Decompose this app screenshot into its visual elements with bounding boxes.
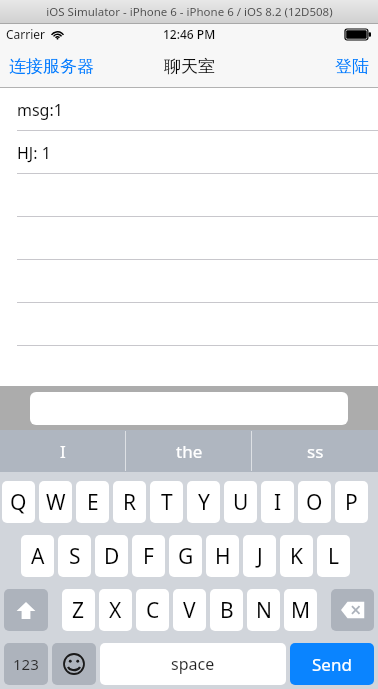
button[interactable]: F <box>132 535 165 577</box>
staticText: 123 <box>13 654 39 674</box>
staticText: H <box>215 542 231 571</box>
button[interactable]: E <box>76 481 109 523</box>
button[interactable]: R <box>113 481 146 523</box>
button[interactable]: 连接服务器 <box>0 48 103 85</box>
staticText: I <box>60 440 66 463</box>
button[interactable]: msg:1 <box>0 88 378 131</box>
button[interactable]: N <box>247 589 280 631</box>
staticText: ss <box>307 440 324 463</box>
button[interactable]: S <box>58 535 91 577</box>
staticText: Send <box>312 653 352 676</box>
staticText: the <box>176 440 203 463</box>
staticText: F <box>143 542 154 571</box>
staticText: G <box>178 542 194 571</box>
staticText: B <box>220 596 234 625</box>
staticText: N <box>256 596 272 625</box>
button[interactable]: A <box>21 535 54 577</box>
button[interactable] <box>0 217 378 260</box>
button[interactable] <box>0 260 378 303</box>
button[interactable]: J <box>243 535 276 577</box>
staticText: O <box>306 488 323 517</box>
staticText: C <box>146 596 160 625</box>
staticText: D <box>104 542 120 571</box>
button[interactable]: B <box>210 589 243 631</box>
staticText: 聊天室 <box>164 56 215 77</box>
button[interactable]: X <box>99 589 132 631</box>
button[interactable]: HJ: 1 <box>0 131 378 174</box>
staticText: P <box>345 488 358 517</box>
button[interactable]: Backspace <box>331 589 374 631</box>
button[interactable]: Shift <box>4 589 48 631</box>
staticText: L <box>328 542 340 571</box>
staticText: R <box>123 488 137 517</box>
staticText: msg:1 <box>17 99 63 121</box>
button[interactable] <box>0 174 378 217</box>
staticText: X <box>109 596 122 625</box>
staticText: T <box>161 488 173 517</box>
staticText: HJ: 1 <box>17 142 51 164</box>
button[interactable]: O <box>298 481 331 523</box>
button[interactable]: C <box>136 589 169 631</box>
button[interactable]: 123 <box>4 643 48 685</box>
staticText: 登陆 <box>335 56 369 77</box>
button[interactable]: V <box>173 589 206 631</box>
staticText: U <box>233 488 249 517</box>
staticText: W <box>46 488 66 517</box>
button[interactable]: M <box>284 589 317 631</box>
staticText: 12:46 PM <box>163 26 216 42</box>
button[interactable]: W <box>39 481 72 523</box>
staticText: space <box>171 653 215 675</box>
staticText: M <box>291 596 311 625</box>
staticText: Q <box>10 488 27 517</box>
button[interactable]: K <box>280 535 313 577</box>
staticText: J <box>257 542 263 571</box>
button[interactable]: D <box>95 535 128 577</box>
staticText: E <box>87 488 99 517</box>
button[interactable]: the <box>126 430 252 472</box>
staticText: Y <box>198 488 210 517</box>
button[interactable]: Z <box>62 589 95 631</box>
button[interactable]: Message input field <box>30 392 348 425</box>
button[interactable] <box>0 303 378 346</box>
button[interactable]: P <box>335 481 368 523</box>
button[interactable]: L <box>317 535 350 577</box>
staticText: iOS Simulator - iPhone 6 - iPhone 6 / iO… <box>46 4 333 20</box>
button[interactable]: T <box>150 481 183 523</box>
staticText: Carrier <box>6 26 46 42</box>
button[interactable]: Send <box>290 643 374 685</box>
button[interactable]: Emoji keyboard <box>52 643 96 685</box>
button[interactable]: I <box>261 481 294 523</box>
button[interactable]: Y <box>187 481 220 523</box>
button[interactable]: 登陆 <box>326 48 378 85</box>
button[interactable]: I <box>0 430 126 472</box>
staticText: 连接服务器 <box>9 56 94 77</box>
staticText: V <box>183 596 196 625</box>
staticText: S <box>69 542 81 571</box>
button[interactable]: space <box>100 643 286 685</box>
button[interactable]: G <box>169 535 202 577</box>
button[interactable]: Q <box>2 481 35 523</box>
button[interactable]: ss <box>252 430 378 472</box>
staticText: K <box>290 542 303 571</box>
staticText: Z <box>72 596 85 625</box>
button[interactable]: H <box>206 535 239 577</box>
staticText: I <box>274 488 282 517</box>
staticText: A <box>31 542 45 571</box>
button[interactable]: U <box>224 481 257 523</box>
